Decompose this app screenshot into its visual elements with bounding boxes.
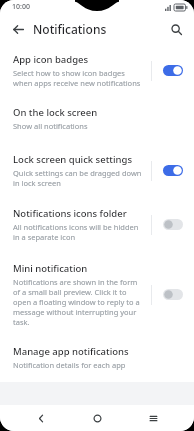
staticText: Notifications are shown in the form of a… (13, 277, 145, 327)
button[interactable]: App icon badges toggle (163, 65, 183, 76)
staticText: Lock screen quick settings (13, 153, 132, 166)
button[interactable]: Search (163, 16, 189, 42)
staticText: Manage app notifications (13, 345, 129, 358)
button[interactable]: App icon badges (0, 44, 194, 97)
button[interactable]: Back (5, 16, 31, 42)
button[interactable]: Manage app notifications (0, 337, 194, 382)
button[interactable]: Recents (138, 405, 168, 431)
button[interactable]: Mini notification toggle (163, 289, 183, 300)
button[interactable]: Mini notification (0, 254, 194, 337)
button[interactable]: Lock screen quick settings (0, 145, 194, 198)
staticText: Quick settings can be dragged down in lo… (13, 168, 145, 188)
button[interactable]: Notifications icons folder (0, 198, 194, 254)
button[interactable]: Back (26, 405, 56, 431)
staticText: App icon badges (13, 53, 89, 66)
button[interactable]: Home (82, 405, 112, 431)
button[interactable]: On the lock screen (0, 97, 194, 145)
staticText: Mini notification (13, 262, 88, 275)
staticText: Notifications icons folder (13, 207, 127, 220)
staticText: On the lock screen (13, 106, 98, 119)
staticText: Notifications (33, 21, 107, 37)
staticText: 10:00 (12, 2, 30, 12)
staticText: All notifications icons will be hidden i… (13, 222, 145, 242)
staticText: Notification details for each app (13, 360, 126, 370)
button[interactable]: Notifications icons folder toggle (163, 219, 183, 230)
staticText: Show all notifications (13, 121, 88, 131)
staticText: Select how to show icon badges when apps… (13, 68, 145, 88)
button[interactable]: Lock screen quick settings toggle (163, 165, 183, 176)
